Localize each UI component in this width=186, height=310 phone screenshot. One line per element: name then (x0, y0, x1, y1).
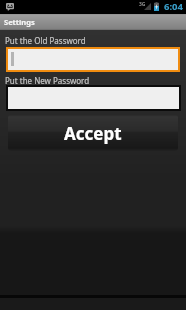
button[interactable]: Accept (8, 115, 178, 151)
staticText: Settings (4, 17, 35, 27)
other: Battery charging (154, 2, 159, 11)
button[interactable]: Old password field (8, 49, 178, 70)
staticText: 3G (139, 1, 146, 8)
staticText: Put the New Password (5, 75, 90, 86)
other: Signal strength (144, 3, 151, 10)
staticText: Accept (64, 122, 122, 145)
staticText: Put the Old Password (5, 35, 86, 46)
other: New message (6, 3, 14, 11)
staticText: 6:04 (164, 0, 183, 13)
